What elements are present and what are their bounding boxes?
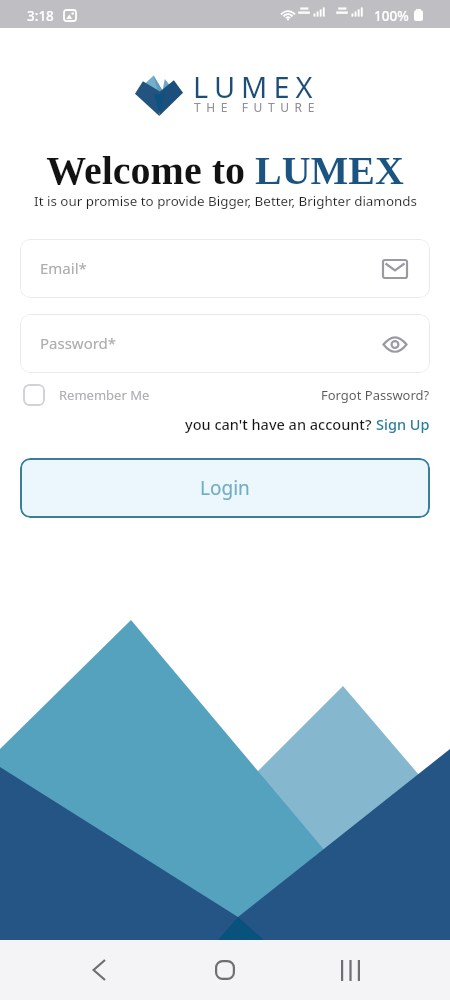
staticText: Remember Me xyxy=(59,386,150,404)
staticText: Welcome to LUMEX xyxy=(46,148,404,192)
button[interactable]: Email xyxy=(379,253,411,285)
button[interactable]: Forgot Password? xyxy=(321,386,430,404)
staticText: Password* xyxy=(40,333,117,353)
button[interactable]: Email* xyxy=(20,239,430,298)
staticText: 100% xyxy=(374,7,409,25)
staticText: It is our promise to provide Bigger, Bet… xyxy=(34,192,417,210)
staticText: THE FUTURE xyxy=(194,99,320,115)
staticText: you can't have an account? xyxy=(185,414,376,434)
button[interactable]: Recent apps xyxy=(326,940,374,1000)
button[interactable]: Remember Me xyxy=(23,384,150,406)
staticText: LUMEX xyxy=(193,67,319,106)
button[interactable]: Sign Up xyxy=(376,414,430,434)
button[interactable]: Password* xyxy=(20,314,430,373)
button[interactable]: Home xyxy=(201,940,249,1000)
staticText: Login xyxy=(200,475,250,501)
button[interactable]: Login xyxy=(20,458,430,518)
button[interactable]: Back xyxy=(75,940,123,1000)
staticText: Email* xyxy=(40,258,87,278)
staticText: 3:18 xyxy=(27,7,54,25)
button[interactable]: Show password xyxy=(379,328,411,360)
